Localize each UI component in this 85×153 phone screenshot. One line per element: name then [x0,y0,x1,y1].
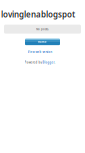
button[interactable]: View web version [27,50,52,54]
staticText: Home [38,40,47,44]
staticText: View web version [27,50,52,54]
staticText: No posts. [36,27,49,31]
staticText: lovinglenablogspot [1,9,75,20]
button[interactable]: Home [25,39,60,45]
button[interactable]: Blogger [42,61,54,64]
staticText: Powered by [24,61,42,64]
staticText: Blogger [42,61,54,64]
staticText: . [54,61,55,64]
